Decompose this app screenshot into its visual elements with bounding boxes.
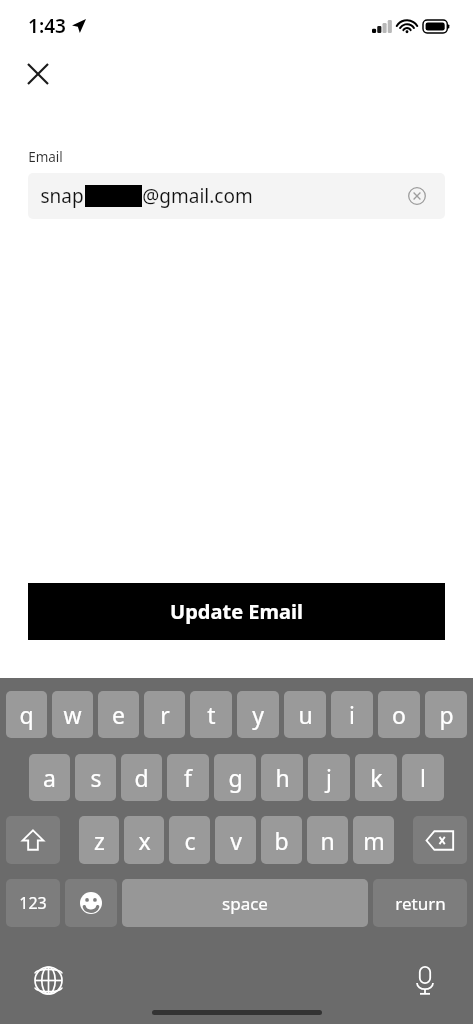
button[interactable]: c (169, 816, 210, 864)
staticText: c (184, 825, 196, 856)
staticText: x (138, 825, 151, 856)
button[interactable]: m (353, 816, 394, 864)
button[interactable]: o (378, 691, 420, 738)
button[interactable]: 123 (6, 879, 60, 927)
button[interactable]: return (373, 879, 467, 927)
staticText: v (230, 825, 242, 856)
button[interactable]: p (425, 691, 467, 738)
button[interactable]: snap (28, 173, 445, 219)
staticText: i (349, 699, 355, 730)
staticText: s (90, 762, 102, 793)
button[interactable]: z (79, 816, 119, 864)
staticText: d (134, 762, 149, 793)
button[interactable]: q (6, 691, 47, 738)
button[interactable]: l (402, 754, 444, 801)
button[interactable]: Dictation (403, 958, 447, 1002)
staticText: w (63, 699, 82, 730)
button[interactable]: t (190, 691, 232, 738)
button[interactable]: j (308, 754, 350, 801)
button[interactable]: i (331, 691, 373, 738)
staticText: 123 (19, 892, 47, 914)
button[interactable]: Backspace (413, 816, 467, 864)
staticText: @gmail.com (142, 183, 253, 209)
staticText: h (275, 762, 290, 793)
button[interactable]: x (124, 816, 164, 864)
button[interactable]: Close (20, 56, 56, 92)
staticText: u (298, 699, 313, 730)
staticText: j (326, 762, 332, 793)
button[interactable]: b (261, 816, 302, 864)
staticText: z (94, 825, 105, 856)
staticText: q (19, 699, 34, 730)
button[interactable]: r (144, 691, 185, 738)
button[interactable]: v (215, 816, 256, 864)
button[interactable]: Emoji (65, 879, 117, 927)
button[interactable]: y (237, 691, 279, 738)
staticText: return (395, 892, 446, 915)
staticText: y (252, 699, 264, 730)
button[interactable]: h (261, 754, 303, 801)
button[interactable]: f (167, 754, 209, 801)
staticText: r (160, 699, 170, 730)
staticText: e (112, 699, 125, 730)
staticText: o (392, 699, 406, 730)
staticText: n (320, 825, 335, 856)
button[interactable]: space (122, 879, 368, 927)
staticText: Email (28, 148, 63, 166)
button[interactable]: Change keyboard (26, 958, 70, 1002)
staticText: a (43, 762, 56, 793)
staticText: 1:43 (28, 13, 66, 39)
button[interactable]: u (284, 691, 326, 738)
staticText: l (420, 762, 426, 793)
button[interactable]: k (355, 754, 397, 801)
button[interactable]: d (121, 754, 162, 801)
button[interactable]: n (307, 816, 348, 864)
staticText: p (439, 699, 454, 730)
button[interactable]: e (98, 691, 139, 738)
staticText: g (228, 762, 243, 793)
button[interactable]: Update Email (28, 583, 445, 640)
button[interactable]: w (52, 691, 93, 738)
staticText: k (370, 762, 383, 793)
staticText: Update Email (170, 598, 303, 625)
staticText: m (363, 825, 385, 856)
staticText: snap (40, 183, 84, 209)
button[interactable]: s (75, 754, 116, 801)
button[interactable]: a (29, 754, 70, 801)
staticText: space (222, 892, 268, 915)
staticText: t (207, 699, 216, 730)
button[interactable]: Shift (6, 816, 60, 864)
staticText: b (274, 825, 289, 856)
button[interactable]: Clear text (404, 183, 430, 209)
button[interactable]: g (214, 754, 256, 801)
staticText: f (184, 762, 192, 793)
